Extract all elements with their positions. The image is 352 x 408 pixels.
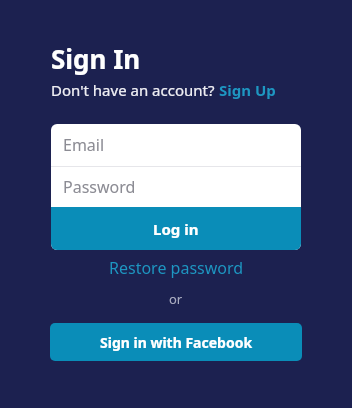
button[interactable]: Log in: [51, 207, 301, 250]
button[interactable]: Sign Up: [219, 80, 276, 100]
staticText: Log in: [153, 219, 199, 239]
staticText: or: [169, 290, 183, 308]
staticText: Password: [63, 176, 136, 198]
staticText: Sign in with Facebook: [100, 333, 253, 352]
button[interactable]: Email: [51, 124, 301, 166]
staticText: Don't have an account?: [51, 80, 219, 100]
staticText: Sign Up: [219, 80, 276, 100]
button[interactable]: Sign in with Facebook: [50, 323, 302, 361]
staticText: Restore password: [109, 257, 244, 279]
staticText: Email: [63, 134, 105, 156]
staticText: Sign In: [51, 41, 141, 76]
button[interactable]: Restore password: [109, 257, 244, 279]
button[interactable]: Password: [51, 167, 301, 207]
